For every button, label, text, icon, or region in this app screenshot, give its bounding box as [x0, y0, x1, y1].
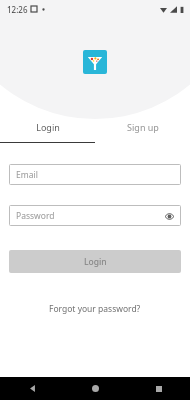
button[interactable]: Email: [9, 164, 181, 185]
staticText: Login: [84, 256, 107, 268]
button[interactable]: Forgot your password?: [43, 300, 147, 318]
button[interactable]: Recent apps: [127, 377, 190, 400]
button[interactable]: Show password: [162, 209, 176, 223]
button[interactable]: Home: [64, 377, 127, 400]
staticText: Forgot your password?: [49, 303, 141, 315]
staticText: Login: [36, 121, 60, 133]
button[interactable]: Back: [0, 377, 64, 400]
button[interactable]: Password: [9, 205, 181, 226]
button[interactable]: Sign up: [95, 121, 190, 143]
button[interactable]: Login: [9, 250, 181, 273]
staticText: Sign up: [127, 121, 159, 133]
staticText: Password: [16, 210, 55, 222]
button[interactable]: Login: [0, 121, 95, 143]
staticText: 12:26: [7, 4, 28, 15]
staticText: Email: [16, 169, 38, 181]
